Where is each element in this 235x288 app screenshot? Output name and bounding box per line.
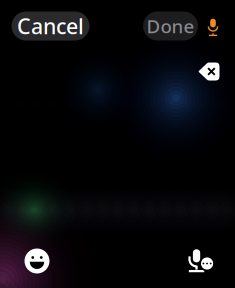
button[interactable]: Dictate [202,14,224,40]
staticText: Done [146,14,194,38]
button[interactable]: Delete [198,62,219,80]
staticText: Cancel [17,12,84,40]
button[interactable]: Emoji [24,248,49,273]
button[interactable]: Done [143,11,198,40]
button[interactable]: Cancel [11,11,89,40]
button[interactable]: Dictation [187,248,214,273]
